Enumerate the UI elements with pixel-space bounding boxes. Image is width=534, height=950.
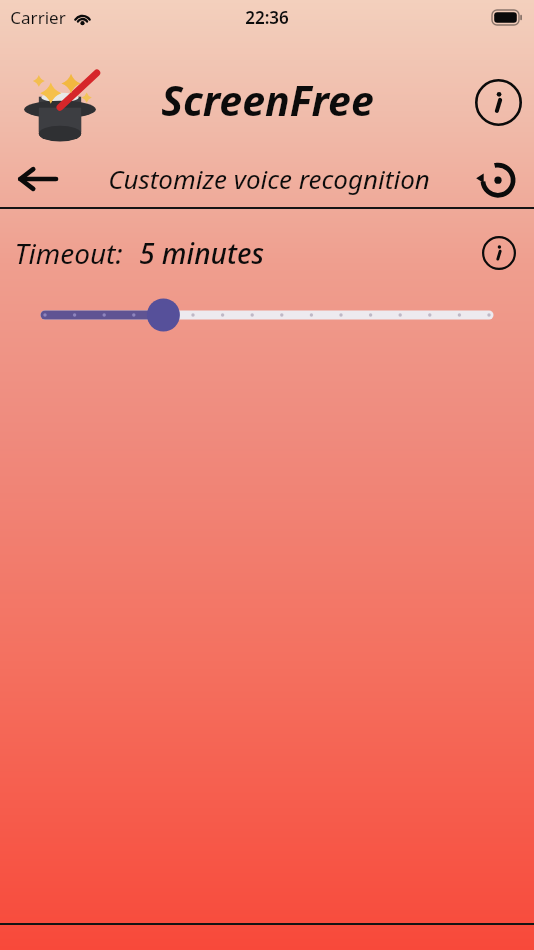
- button[interactable]: About ScreenFree: [473, 77, 523, 127]
- button[interactable]: ScreenFree logo: [14, 58, 106, 146]
- staticText: Timeout:: [14, 234, 123, 272]
- button[interactable]: Timeout slider, 5 minutes: [0, 290, 534, 340]
- button[interactable]: Reset to defaults: [470, 153, 526, 205]
- button[interactable]: Timeout information: [477, 231, 521, 275]
- staticText: 5 minutes: [139, 234, 264, 272]
- staticText: ScreenFree: [161, 72, 374, 128]
- staticText: 22:36: [245, 6, 289, 29]
- staticText: Carrier: [10, 6, 66, 29]
- staticText: Customize voice recognition: [108, 161, 430, 196]
- button[interactable]: Back: [8, 154, 66, 204]
